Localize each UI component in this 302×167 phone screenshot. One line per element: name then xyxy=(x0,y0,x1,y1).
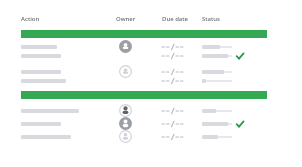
button[interactable]: Owner avatar xyxy=(0,117,302,130)
staticText: Status xyxy=(202,15,221,23)
button[interactable]: Owner avatar xyxy=(0,67,302,76)
button[interactable]: Owner avatar xyxy=(119,42,132,51)
other: Completed xyxy=(236,120,244,128)
button[interactable] xyxy=(202,70,232,74)
other: Completed xyxy=(236,52,244,60)
staticText: Owner xyxy=(116,15,136,23)
button[interactable] xyxy=(202,79,232,83)
button[interactable] xyxy=(0,76,302,85)
button[interactable] xyxy=(202,109,232,113)
staticText: Due date xyxy=(162,15,189,23)
button[interactable] xyxy=(202,122,232,126)
button[interactable] xyxy=(202,54,232,58)
button[interactable]: Owner avatar xyxy=(119,117,132,130)
button[interactable]: Owner avatar xyxy=(119,130,132,143)
staticText: Action xyxy=(21,15,40,23)
button[interactable]: Owner avatar xyxy=(0,130,302,143)
button[interactable]: Owner avatar xyxy=(119,67,132,76)
button[interactable]: Owner avatar xyxy=(0,42,302,51)
button[interactable]: Completed xyxy=(0,51,302,60)
button[interactable] xyxy=(202,45,232,49)
button[interactable]: Owner avatar xyxy=(0,104,302,117)
button[interactable] xyxy=(202,135,232,139)
button[interactable]: Owner avatar xyxy=(119,104,132,117)
